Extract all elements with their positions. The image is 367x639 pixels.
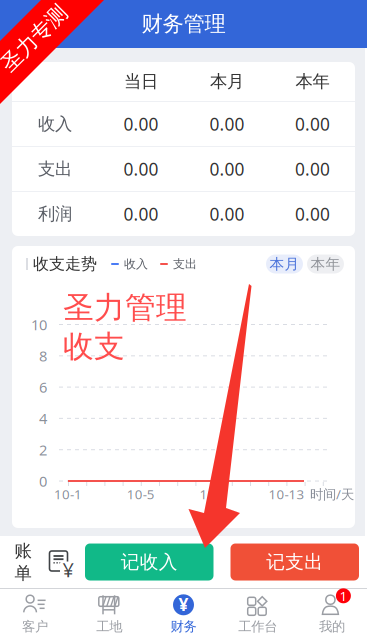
staticText: 2 — [39, 440, 47, 459]
staticText: 客户 — [22, 618, 48, 635]
button[interactable]: ¥ — [146, 591, 221, 637]
staticText: 1 — [339, 587, 347, 605]
staticText: 收入 — [124, 257, 148, 271]
staticText: ¥ — [178, 593, 188, 616]
staticText: 时间/天 — [310, 485, 354, 503]
button[interactable]: 记支出 — [230, 543, 359, 580]
staticText: 收支 — [63, 328, 125, 365]
staticText: 0.00 — [295, 202, 330, 225]
staticText: 单 — [14, 562, 31, 584]
staticText: 0.00 — [295, 112, 330, 135]
button[interactable]: 工作台 — [221, 591, 295, 637]
staticText: ¥ — [62, 556, 73, 583]
staticText: 我的 — [319, 618, 345, 635]
staticText: 0.00 — [209, 157, 244, 180]
button[interactable]: 本年 — [307, 254, 344, 273]
staticText: 工作台 — [238, 618, 277, 635]
staticText: 0.00 — [123, 112, 158, 135]
staticText: 本月 — [269, 255, 299, 273]
staticText: 8 — [39, 346, 47, 366]
staticText: 10-1 — [54, 485, 82, 503]
button[interactable]: 开发票 — [40, 542, 85, 582]
staticText: 10-13 — [268, 485, 304, 503]
staticText: 当日 — [124, 71, 158, 92]
staticText: 本月 — [210, 71, 244, 92]
staticText: 账 — [14, 540, 31, 561]
staticText: 圣力专测 — [0, 25, 76, 52]
staticText: 财务管理 — [141, 11, 225, 37]
staticText: 支出 — [173, 257, 197, 271]
staticText: 本年 — [295, 71, 329, 92]
button[interactable]: 账 — [6, 542, 40, 582]
staticText: 10 — [31, 315, 47, 334]
staticText: 0.00 — [123, 157, 158, 180]
staticText: 0.00 — [209, 202, 244, 225]
staticText: 圣力管理 — [63, 289, 187, 327]
button[interactable]: 客户 — [0, 591, 72, 637]
staticText: 记支出 — [266, 550, 323, 573]
staticText: 0.00 — [209, 112, 244, 135]
button[interactable]: 本月 — [266, 254, 303, 273]
button[interactable]: 工地 — [72, 591, 146, 637]
staticText: 10-9 — [200, 485, 228, 503]
staticText: 收入 — [38, 113, 72, 135]
staticText: 4 — [39, 409, 47, 428]
staticText: 0 — [39, 471, 47, 491]
staticText: 支出 — [38, 158, 72, 180]
staticText: 0.00 — [123, 202, 158, 225]
staticText: 财务 — [170, 618, 196, 635]
staticText: 6 — [39, 377, 47, 397]
staticText: 利润 — [38, 203, 72, 225]
button[interactable]: 1 — [295, 591, 367, 637]
staticText: 本年 — [310, 255, 340, 273]
staticText: 收支走势 — [33, 254, 97, 274]
staticText: 10-5 — [127, 485, 155, 503]
button[interactable]: 记收入 — [85, 543, 213, 580]
staticText: 记收入 — [121, 550, 178, 573]
staticText: 0.00 — [295, 157, 330, 180]
staticText: 工地 — [96, 618, 122, 635]
